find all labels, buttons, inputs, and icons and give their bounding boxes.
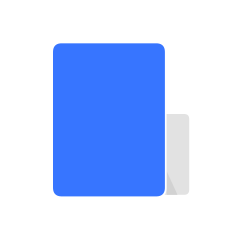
button[interactable]: Duplicate [0,0,240,240]
